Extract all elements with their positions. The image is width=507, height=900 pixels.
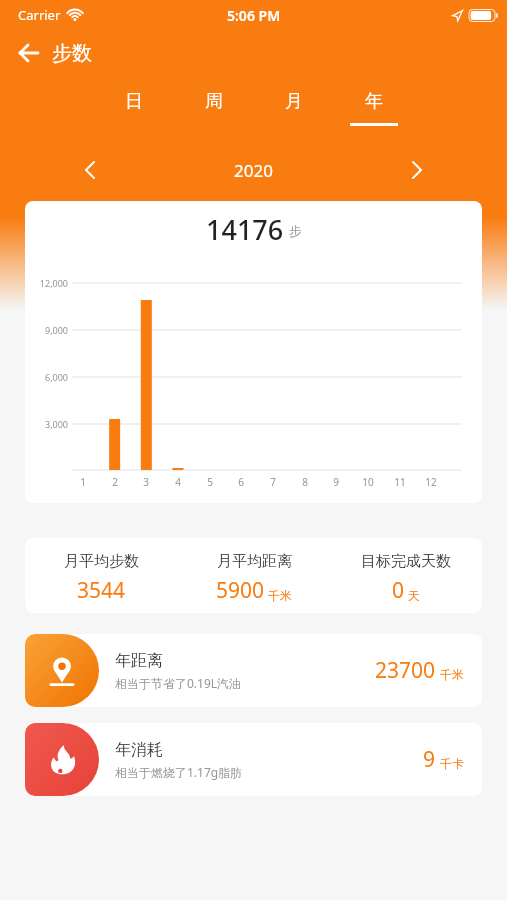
button[interactable] [84, 160, 96, 180]
button[interactable] [18, 42, 40, 64]
staticText: 10 [358, 475, 378, 489]
staticText: 6 [231, 475, 251, 489]
staticText: 月 [285, 90, 303, 113]
staticText: 3544 [77, 576, 126, 605]
staticText: 千米 [268, 588, 292, 603]
staticText: 12,000 [27, 277, 68, 289]
button[interactable]: 月 [254, 90, 334, 126]
staticText: 周 [205, 90, 223, 113]
staticText: 年距离 [115, 651, 163, 671]
staticText: 3,000 [27, 418, 68, 430]
staticText: 4 [168, 475, 188, 489]
staticText: 相当于燃烧了1.17g脂肪 [115, 764, 243, 780]
staticText: 3 [136, 475, 156, 489]
staticText: 9,000 [27, 324, 68, 336]
staticText: 11 [390, 475, 410, 489]
staticText: 千米 [440, 667, 464, 682]
staticText: Carrier [18, 6, 61, 24]
staticText: 9 [423, 745, 436, 774]
staticText: 目标完成天数 [361, 552, 451, 571]
staticText: 2 [105, 475, 125, 489]
staticText: 5:06 PM [227, 6, 281, 25]
button[interactable]: 日 [94, 90, 174, 126]
staticText: 步数 [52, 41, 92, 66]
staticText: 23700 [375, 656, 436, 685]
staticText: 千卡 [440, 756, 464, 771]
staticText: 年消耗 [115, 740, 163, 760]
staticText: 12 [421, 475, 441, 489]
staticText: 9 [326, 475, 346, 489]
staticText: 1 [73, 475, 93, 489]
button[interactable]: 年距离 [25, 634, 482, 707]
staticText: 8 [295, 475, 315, 489]
button[interactable]: 年消耗 [25, 723, 482, 796]
staticText: 0 [392, 576, 405, 605]
staticText: 月平均距离 [217, 552, 292, 571]
button[interactable]: 年 [334, 90, 414, 126]
staticText: 5900 [216, 576, 265, 605]
staticText: 年 [365, 90, 383, 113]
button[interactable]: 周 [174, 90, 254, 126]
staticText: 5 [200, 475, 220, 489]
staticText: 相当于节省了0.19L汽油 [115, 675, 242, 691]
staticText: 天 [408, 588, 420, 603]
button[interactable] [411, 160, 423, 180]
staticText: 14176 [206, 211, 284, 243]
staticText: 7 [263, 475, 283, 489]
staticText: 步 [289, 223, 302, 239]
staticText: 6,000 [27, 371, 68, 383]
staticText: 日 [125, 90, 143, 113]
staticText: 月平均步数 [64, 552, 139, 571]
staticText: 2020 [234, 159, 273, 182]
